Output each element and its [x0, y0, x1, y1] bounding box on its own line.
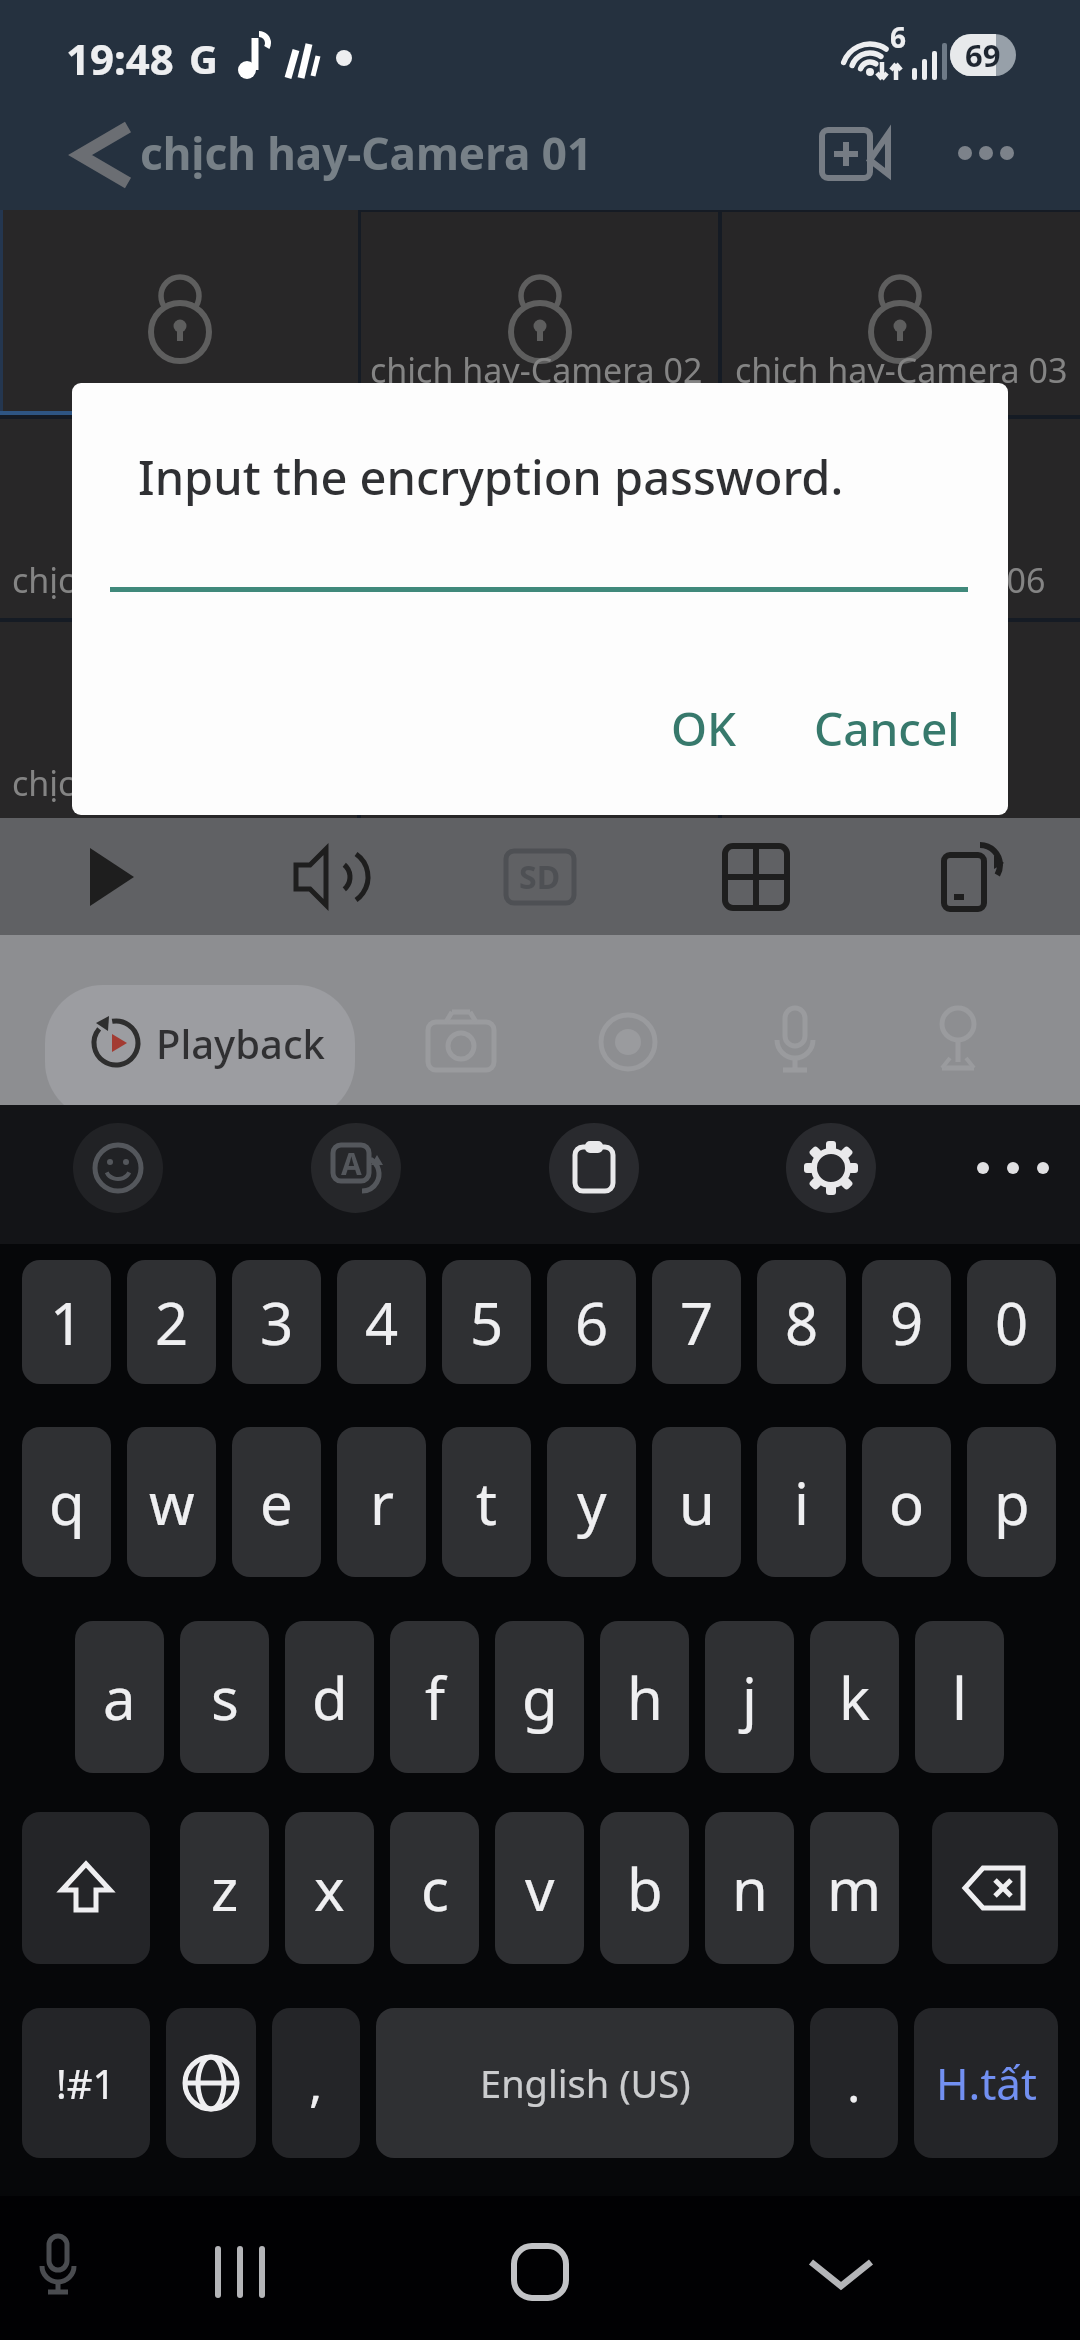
staticText: f — [425, 1658, 445, 1737]
button[interactable]: 4 — [337, 1260, 426, 1384]
button[interactable]: b — [600, 1812, 689, 1964]
button[interactable] — [195, 2230, 279, 2314]
button[interactable]: d — [285, 1621, 374, 1773]
button[interactable] — [0, 210, 358, 415]
button[interactable]: y — [547, 1427, 636, 1577]
button[interactable]: z — [180, 1812, 269, 1964]
button[interactable]: , — [272, 2008, 360, 2158]
button[interactable]: A — [311, 1123, 401, 1213]
button[interactable]: English (US) — [376, 2008, 794, 2158]
button[interactable]: SD — [498, 835, 582, 919]
button[interactable] — [73, 1123, 163, 1213]
staticText: OK — [671, 697, 737, 760]
button[interactable]: h — [600, 1621, 689, 1773]
button[interactable] — [812, 112, 898, 196]
button[interactable] — [930, 835, 1014, 919]
staticText: Input the encryption password. — [138, 445, 844, 509]
button[interactable]: n — [705, 1812, 794, 1964]
staticText: 9 — [890, 1283, 924, 1362]
button[interactable] — [282, 835, 366, 919]
button[interactable] — [932, 1812, 1058, 1964]
button[interactable]: OK — [632, 683, 776, 773]
button[interactable]: m — [810, 1812, 899, 1964]
staticText: n — [732, 1849, 768, 1928]
button[interactable]: 9 — [862, 1260, 951, 1384]
button[interactable] — [60, 110, 150, 200]
staticText: chịch hay-Camera 07 — [12, 760, 345, 806]
button[interactable]: u — [652, 1427, 741, 1577]
staticText: w — [149, 1463, 195, 1542]
button[interactable]: s — [180, 1621, 269, 1773]
staticText: h — [627, 1658, 663, 1737]
button[interactable]: 0 — [967, 1260, 1056, 1384]
button[interactable] — [22, 1812, 150, 1964]
button[interactable]: a — [75, 1621, 164, 1773]
button[interactable] — [916, 1000, 1000, 1084]
button[interactable]: 3 — [232, 1260, 321, 1384]
staticText: i — [794, 1463, 809, 1542]
button[interactable]: 5 — [442, 1260, 531, 1384]
staticText: k — [839, 1658, 870, 1737]
staticText: , — [309, 2049, 323, 2117]
staticText: d — [312, 1658, 348, 1737]
staticText: v — [525, 1849, 555, 1928]
staticText: z — [211, 1849, 239, 1928]
staticText: G — [189, 31, 218, 85]
staticText: Playback — [156, 1016, 325, 1070]
staticText: x — [314, 1849, 345, 1928]
button[interactable]: c — [390, 1812, 479, 1964]
staticText: o — [889, 1463, 925, 1542]
button[interactable] — [66, 835, 150, 919]
button[interactable]: !#1 — [22, 2008, 150, 2158]
staticText: l — [952, 1658, 967, 1737]
button[interactable]: f — [390, 1621, 479, 1773]
button[interactable] — [0, 419, 357, 618]
button[interactable]: v — [495, 1812, 584, 1964]
button[interactable] — [45, 985, 355, 1105]
button[interactable] — [166, 2008, 256, 2158]
button[interactable] — [786, 1123, 876, 1213]
button[interactable] — [753, 1000, 837, 1084]
button[interactable] — [940, 112, 1030, 196]
staticText: 2 — [155, 1283, 189, 1362]
staticText: 7 — [680, 1283, 714, 1362]
button[interactable] — [549, 1123, 639, 1213]
button[interactable]: 2 — [127, 1260, 216, 1384]
button[interactable] — [498, 2230, 582, 2314]
button[interactable]: q — [22, 1427, 111, 1577]
button[interactable]: j — [705, 1621, 794, 1773]
button[interactable]: w — [127, 1427, 216, 1577]
button[interactable]: 7 — [652, 1260, 741, 1384]
button[interactable] — [20, 2230, 96, 2306]
staticText: c — [421, 1849, 449, 1928]
button[interactable]: l — [915, 1621, 1004, 1773]
button[interactable]: x — [285, 1812, 374, 1964]
button[interactable] — [722, 212, 1080, 415]
staticText: 1 — [50, 1283, 84, 1362]
staticText: SD — [519, 855, 561, 899]
staticText: p — [994, 1463, 1030, 1542]
button[interactable]: k — [810, 1621, 899, 1773]
button[interactable]: g — [495, 1621, 584, 1773]
button[interactable]: e — [232, 1427, 321, 1577]
button[interactable]: . — [810, 2008, 898, 2158]
button[interactable]: i — [757, 1427, 846, 1577]
button[interactable] — [586, 1000, 670, 1084]
button[interactable]: Cancel — [812, 683, 962, 773]
button[interactable]: 8 — [757, 1260, 846, 1384]
button[interactable] — [958, 1123, 1068, 1213]
button[interactable]: r — [337, 1427, 426, 1577]
button[interactable] — [0, 622, 357, 818]
staticText: y — [577, 1463, 607, 1542]
button[interactable] — [799, 2230, 883, 2314]
button[interactable]: o — [862, 1427, 951, 1577]
button[interactable]: H.tất — [914, 2008, 1058, 2158]
button[interactable] — [714, 835, 798, 919]
staticText: 0 — [995, 1283, 1029, 1362]
button[interactable]: t — [442, 1427, 531, 1577]
button[interactable] — [361, 212, 718, 415]
button[interactable]: p — [967, 1427, 1056, 1577]
button[interactable] — [420, 1000, 504, 1084]
button[interactable]: 6 — [547, 1260, 636, 1384]
button[interactable]: 1 — [22, 1260, 111, 1384]
